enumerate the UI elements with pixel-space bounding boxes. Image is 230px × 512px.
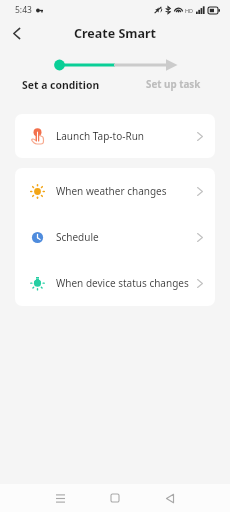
button[interactable]: When weather changes — [15, 168, 215, 214]
staticText: Set a condition — [22, 78, 100, 92]
staticText: Schedule — [56, 230, 99, 244]
staticText: Create Smart — [74, 25, 157, 42]
button[interactable]: When device status changes — [15, 260, 215, 306]
button[interactable]: Recent apps — [38, 484, 82, 512]
button[interactable]: Home — [93, 484, 137, 512]
staticText: HD — [185, 7, 194, 14]
staticText: 5:43 — [15, 4, 32, 16]
button[interactable]: Launch Tap-to-Run — [15, 114, 215, 158]
staticText: Set up task — [146, 78, 201, 91]
staticText: Launch Tap-to-Run — [56, 129, 144, 143]
staticText: When device status changes — [56, 276, 189, 290]
staticText: When weather changes — [56, 184, 167, 198]
button[interactable]: Schedule — [15, 214, 215, 260]
button[interactable]: Back — [0, 20, 33, 46]
button[interactable]: Back — [148, 484, 192, 512]
